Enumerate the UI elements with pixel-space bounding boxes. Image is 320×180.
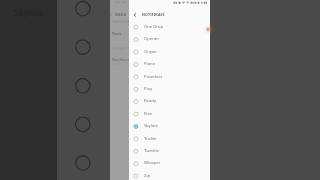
staticText: VOLUME PEMBERITAHUAN (112, 47, 129, 51)
button[interactable]: Back (129, 8, 140, 21)
button[interactable]: Skyline (129, 120, 210, 132)
staticText: Trickle (144, 136, 157, 142)
staticText: Skyline (144, 123, 158, 129)
button[interactable]: Trickle (129, 133, 210, 145)
staticText: Skyline (14, 6, 44, 18)
staticText: Opener (144, 36, 159, 42)
button[interactable]: Ready (129, 95, 210, 107)
button[interactable]: One Drop (129, 21, 210, 33)
button[interactable]: Pixiedust (129, 71, 210, 83)
staticText: Play (144, 86, 153, 92)
button[interactable]: Piano (129, 58, 210, 70)
button[interactable]: Organ (129, 46, 210, 58)
button[interactable]: Whisper (129, 157, 210, 169)
button[interactable]: Opener (129, 33, 210, 45)
staticText: PANGGILAN (112, 20, 129, 24)
staticText: NOTIFIKASI (142, 12, 165, 17)
button[interactable]: Play (129, 83, 210, 95)
staticText: Ready (144, 98, 157, 104)
staticText: One Drop (144, 24, 164, 30)
staticText: Piano (144, 61, 156, 67)
button[interactable]: Rise (129, 108, 210, 120)
staticText: Organ (144, 49, 157, 55)
staticText: NADA DERING (115, 12, 129, 17)
staticText: Skyline (112, 61, 124, 66)
staticText: Pixiedust (144, 74, 162, 80)
staticText: Whisper (144, 160, 161, 166)
button[interactable]: Zip (129, 170, 210, 180)
staticText: Notifikasi (112, 57, 129, 62)
staticText: Nada dering (112, 31, 129, 36)
staticText: Zip (144, 173, 151, 179)
staticText: Over the Horizon (112, 35, 129, 40)
staticText: Twinkle (144, 148, 159, 154)
staticText: Rise (144, 111, 153, 117)
button[interactable]: Twinkle (129, 145, 210, 157)
